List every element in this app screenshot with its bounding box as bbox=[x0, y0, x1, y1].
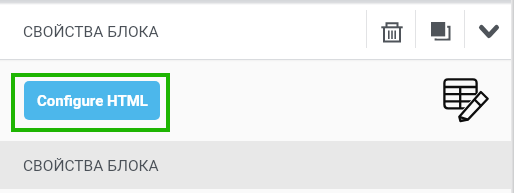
button[interactable]: Duplicate bbox=[416, 0, 464, 59]
button[interactable]: Collapse bbox=[465, 0, 511, 59]
button[interactable] bbox=[0, 141, 514, 189]
staticText: Configure HTML bbox=[37, 92, 148, 110]
button[interactable]: Delete bbox=[367, 0, 415, 59]
staticText: СВОЙСТВА БЛОКА bbox=[23, 157, 159, 175]
button[interactable]: Edit content bbox=[441, 76, 491, 126]
button[interactable]: Configure HTML bbox=[24, 81, 160, 120]
staticText: СВОЙСТВА БЛОКА bbox=[23, 23, 159, 41]
